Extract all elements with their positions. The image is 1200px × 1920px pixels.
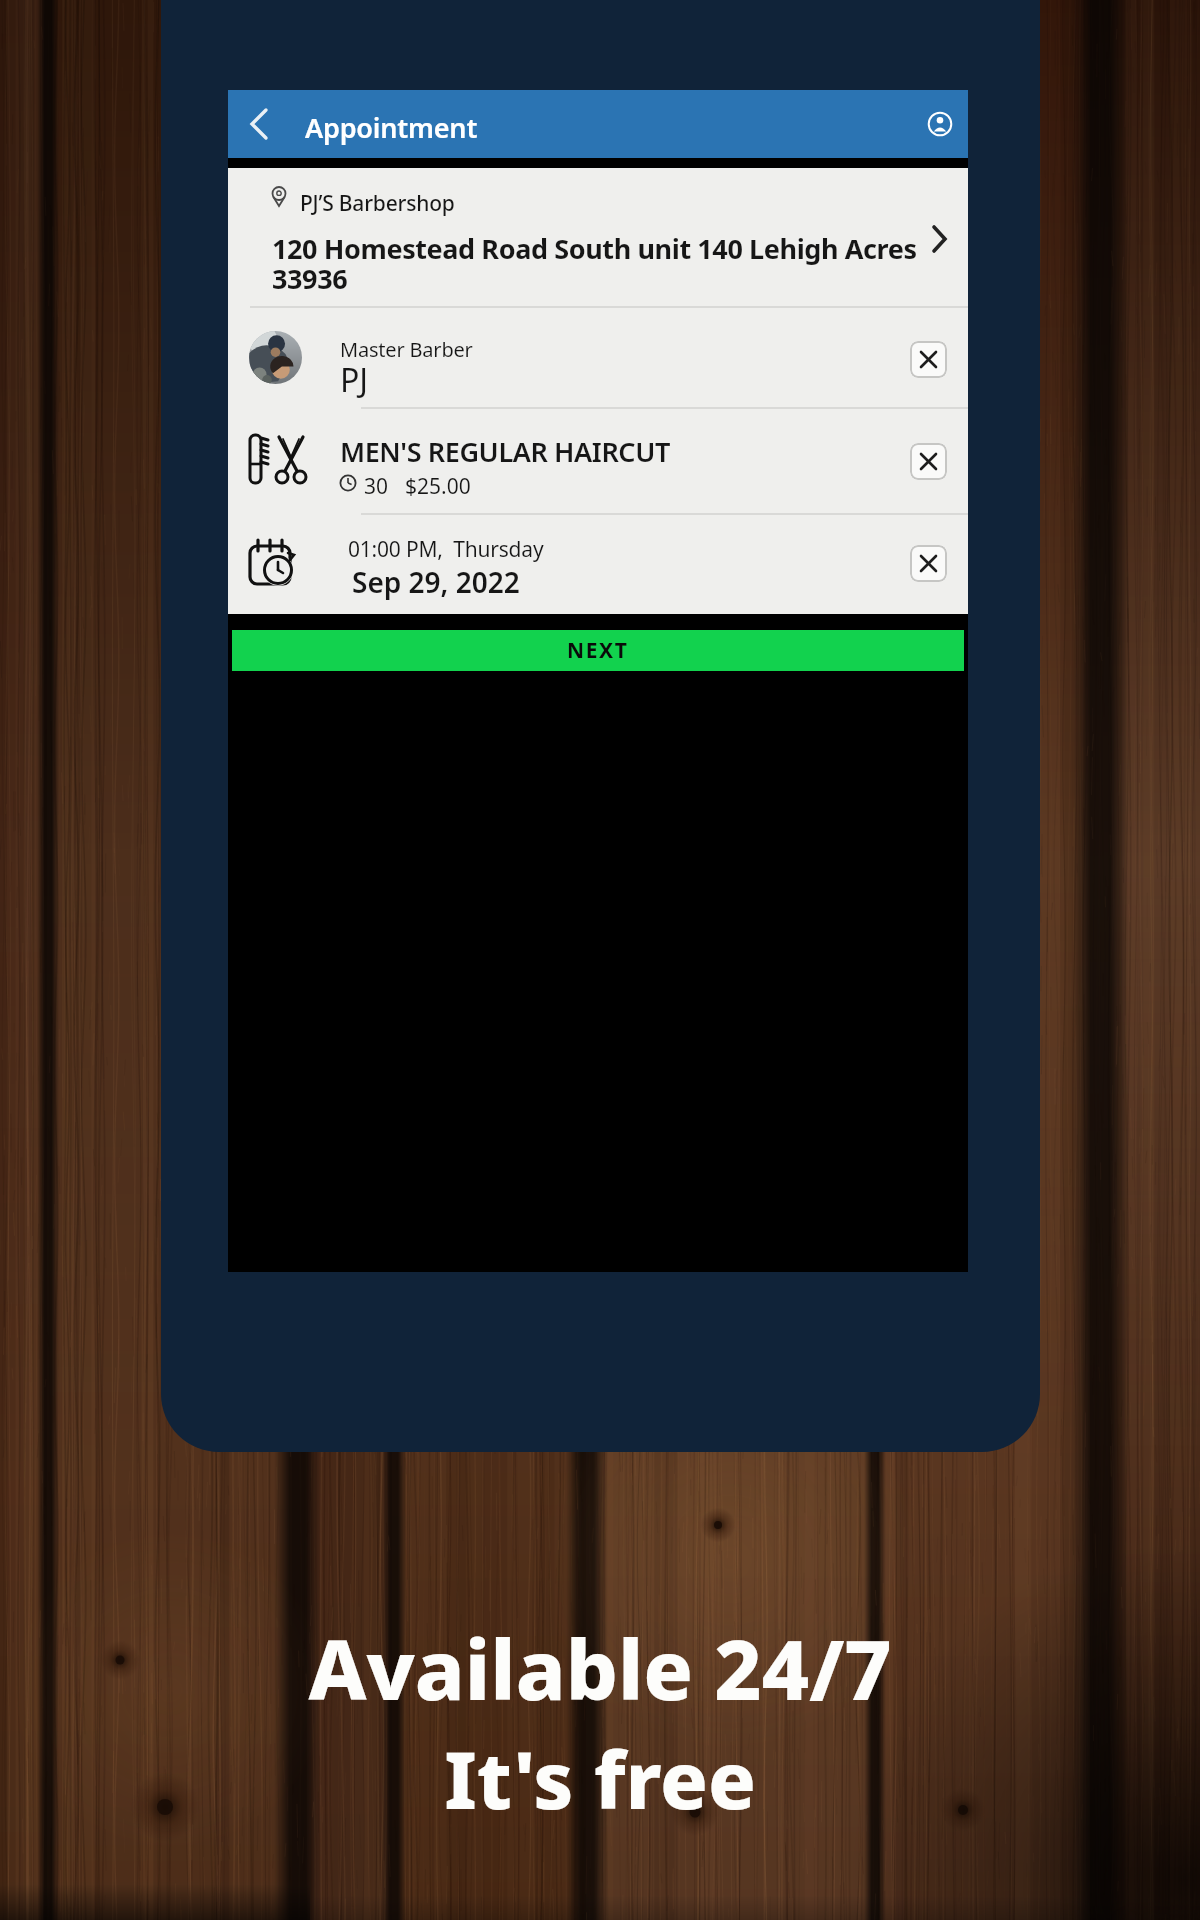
button[interactable] — [238, 102, 282, 146]
button[interactable] — [926, 110, 954, 138]
staticText: PJ — [340, 358, 369, 402]
button[interactable]: NEXT — [232, 630, 964, 671]
staticText: Sep 29, 2022 — [352, 563, 520, 601]
staticText: MEN'S REGULAR HAIRCUT — [340, 433, 670, 470]
staticText: $25.00 — [405, 472, 471, 501]
staticText: 30 — [364, 472, 389, 501]
button[interactable] — [228, 409, 968, 513]
staticText: PJ’S Barbershop — [300, 189, 455, 218]
staticText: 120 Homestead Road South unit 140 Lehigh… — [272, 230, 917, 296]
button[interactable] — [910, 545, 947, 582]
button[interactable] — [228, 174, 968, 304]
staticText: It's free — [444, 1725, 756, 1833]
button[interactable] — [910, 443, 947, 480]
staticText: Master Barber — [340, 336, 473, 363]
button[interactable] — [228, 308, 968, 407]
button[interactable] — [910, 341, 947, 378]
staticText: NEXT — [567, 636, 629, 665]
staticText: 01:00 PM, Thursday — [348, 535, 544, 564]
staticText: Available 24/7 — [308, 1612, 892, 1724]
button[interactable] — [228, 515, 968, 614]
staticText: Appointment — [305, 109, 478, 146]
